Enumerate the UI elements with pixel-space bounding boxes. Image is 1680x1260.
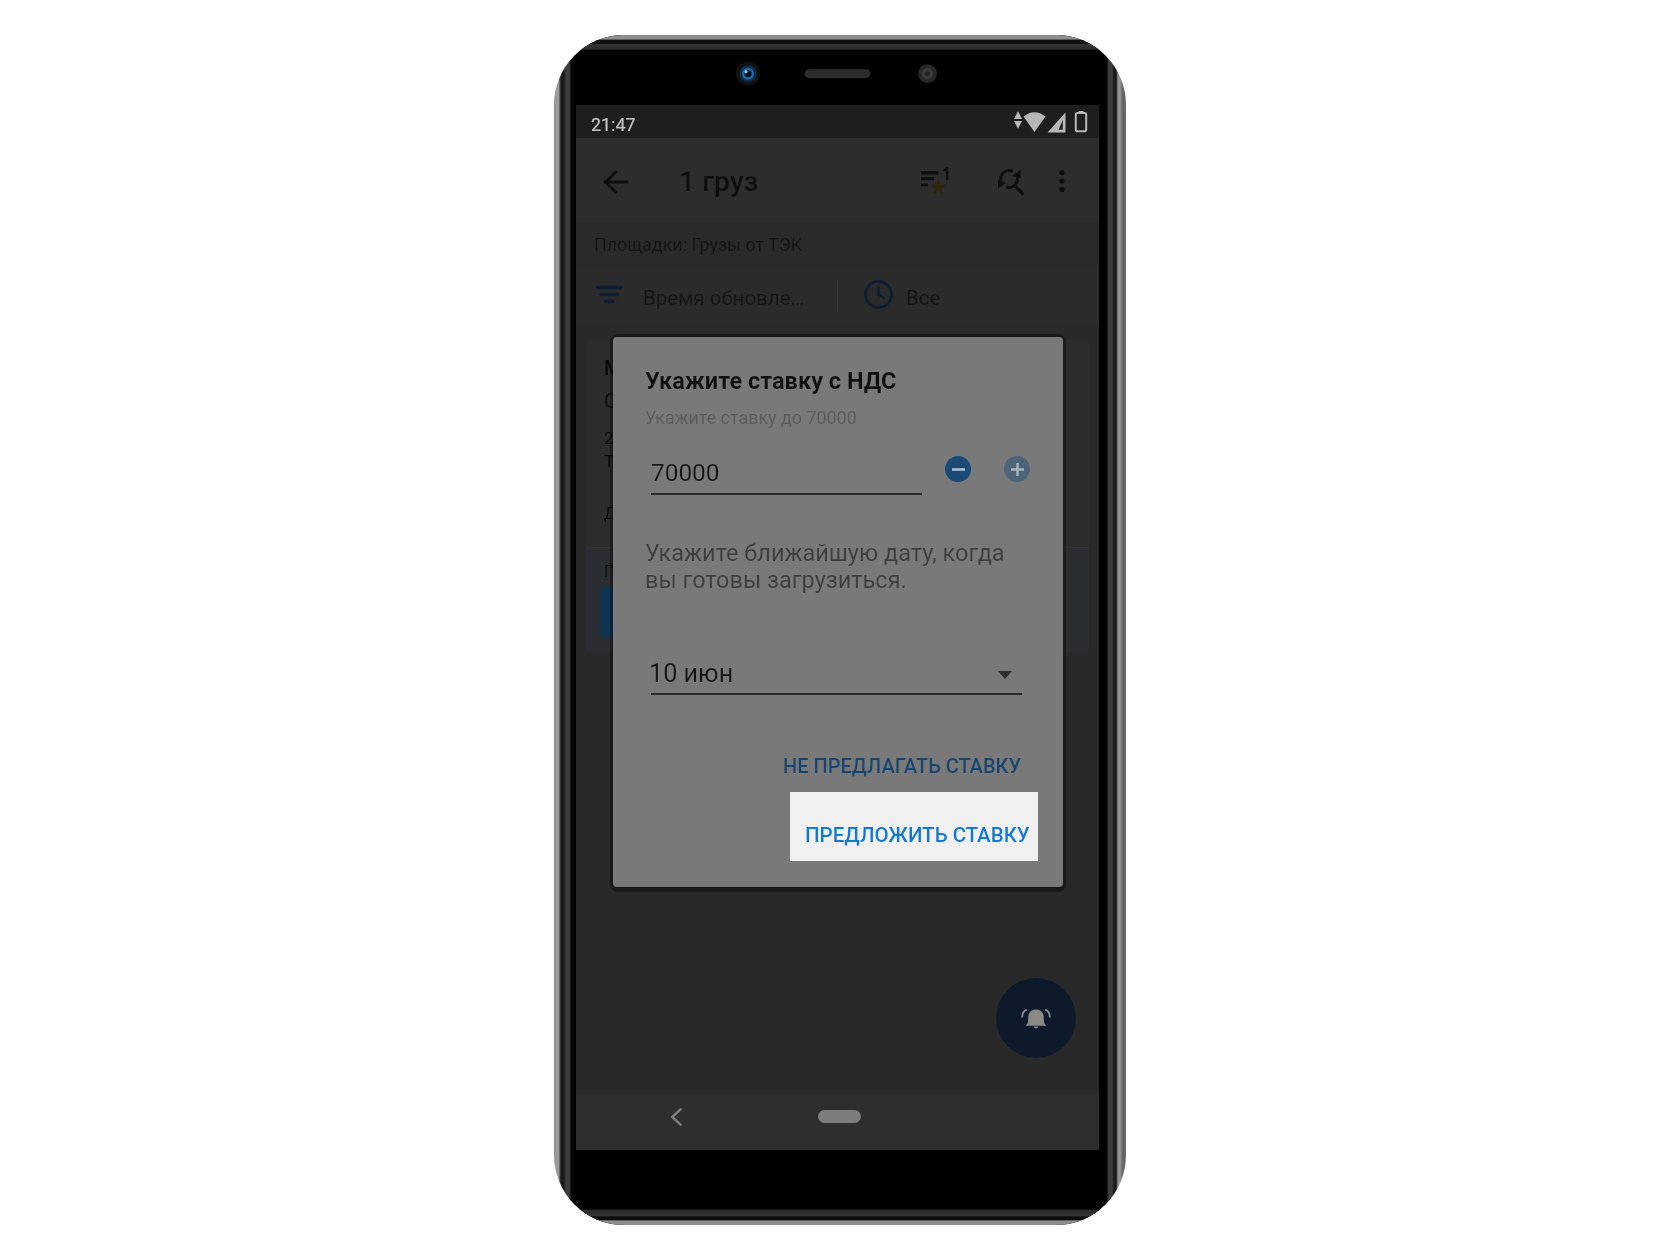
staticText: Предложить ставку bbox=[604, 562, 753, 581]
button[interactable]: НЕ ПРЕДЛАГАТЬ СТАВКУ bbox=[774, 738, 1030, 792]
button[interactable]: Loading date bbox=[645, 642, 1028, 704]
button[interactable]: Alerts bbox=[996, 978, 1076, 1058]
button[interactable] bbox=[600, 587, 752, 637]
staticText: Укажите ближайшую дату, когда bbox=[645, 539, 1005, 567]
staticText: Санкт-Петербург bbox=[604, 389, 761, 412]
button[interactable]: Москва bbox=[586, 340, 1089, 652]
staticText: Все bbox=[906, 286, 941, 310]
staticText: вы готовы загрузиться. bbox=[645, 566, 907, 594]
button[interactable]: Home bbox=[798, 1098, 881, 1134]
staticText: Укажите ставку до 70000 bbox=[645, 407, 857, 428]
staticText: Догруз bbox=[604, 503, 660, 523]
button[interactable]: Time filter: all bbox=[838, 267, 1099, 324]
button[interactable]: Back bbox=[591, 158, 639, 206]
button[interactable]: Refresh search bbox=[986, 157, 1034, 205]
staticText: 1 груз bbox=[679, 165, 759, 198]
staticText: Площадки: Грузы от ТЭК bbox=[594, 234, 803, 255]
staticText: Время обновле… bbox=[643, 286, 805, 310]
button[interactable]: Back bbox=[654, 1095, 698, 1139]
button[interactable]: Increase rate bbox=[1004, 456, 1030, 482]
button[interactable]: Sort by update time bbox=[576, 267, 837, 324]
staticText: НЕ ПРЕДЛАГАТЬ СТАВКУ bbox=[783, 754, 1022, 777]
staticText: Москва bbox=[604, 356, 677, 379]
staticText: 21:47 bbox=[591, 114, 636, 135]
staticText: Тент bbox=[604, 451, 641, 471]
staticText: 70000 bbox=[651, 458, 720, 487]
button[interactable]: Favourite filters bbox=[911, 157, 959, 205]
staticText: Укажите ставку с НДС bbox=[645, 367, 897, 395]
button[interactable]: More options bbox=[1038, 157, 1086, 205]
staticText: ПРЕДЛОЖИТЬ СТАВКУ bbox=[805, 823, 1030, 847]
staticText: 20 т / 86 м³ bbox=[604, 428, 694, 448]
staticText: 10 июн bbox=[649, 659, 734, 689]
button[interactable]: Decrease rate bbox=[945, 456, 971, 482]
button[interactable]: ПРЕДЛОЖИТЬ СТАВКУ bbox=[790, 792, 1038, 861]
